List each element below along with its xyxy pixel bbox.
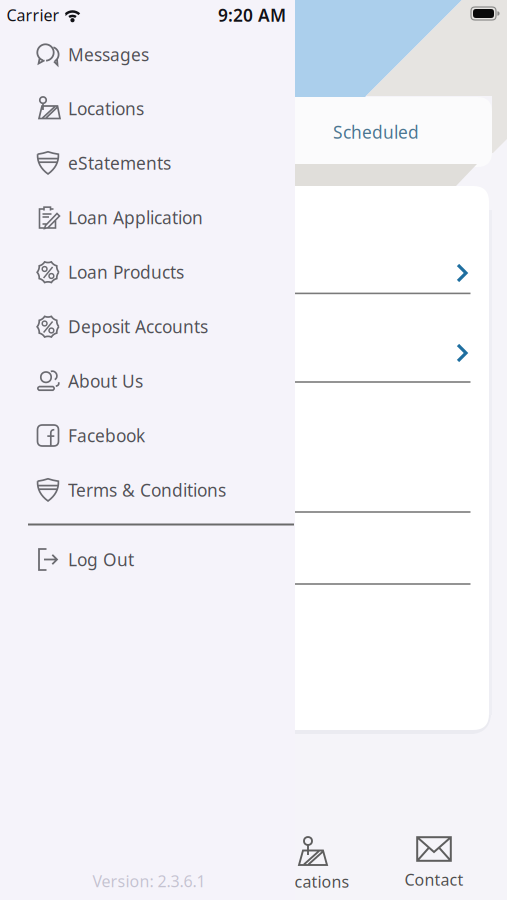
button[interactable]: Locations [35,93,144,123]
staticText: Scheduled [333,120,419,143]
button[interactable]: Scheduled [296,97,456,167]
staticText: Loan Application [68,206,203,229]
staticText: Locations [276,871,349,892]
staticText: eStatements [68,151,171,174]
staticText: Loan Products [68,260,184,283]
staticText: Log Out [68,548,134,571]
button[interactable]: Terms & Conditions [35,475,226,505]
staticText: Facebook [68,424,145,447]
staticText: 9:20 AM [218,3,286,26]
button[interactable]: Loan Application [35,202,203,232]
staticText: Version: 2.3.6.1 [92,870,205,892]
staticText: Deposit Accounts [68,315,208,338]
staticText: Carrier [6,4,59,26]
staticText: Messages [68,43,149,66]
button[interactable]: Select [454,344,470,362]
button[interactable]: Messages [35,39,149,69]
button[interactable]: Deposit Accounts [35,311,208,341]
button[interactable]: Locations [268,836,358,892]
button[interactable]: About Us [35,366,143,396]
button[interactable]: Loan Products [35,257,184,287]
button[interactable]: Log Out [35,544,134,574]
staticText: About Us [68,369,143,392]
button[interactable]: Facebook [35,420,145,450]
button[interactable]: eStatements [35,148,171,178]
button[interactable]: Select [454,264,470,282]
staticText: Locations [68,97,144,120]
button[interactable]: Contact [389,836,479,890]
staticText: Contact [404,869,463,890]
staticText: Terms & Conditions [68,478,226,501]
